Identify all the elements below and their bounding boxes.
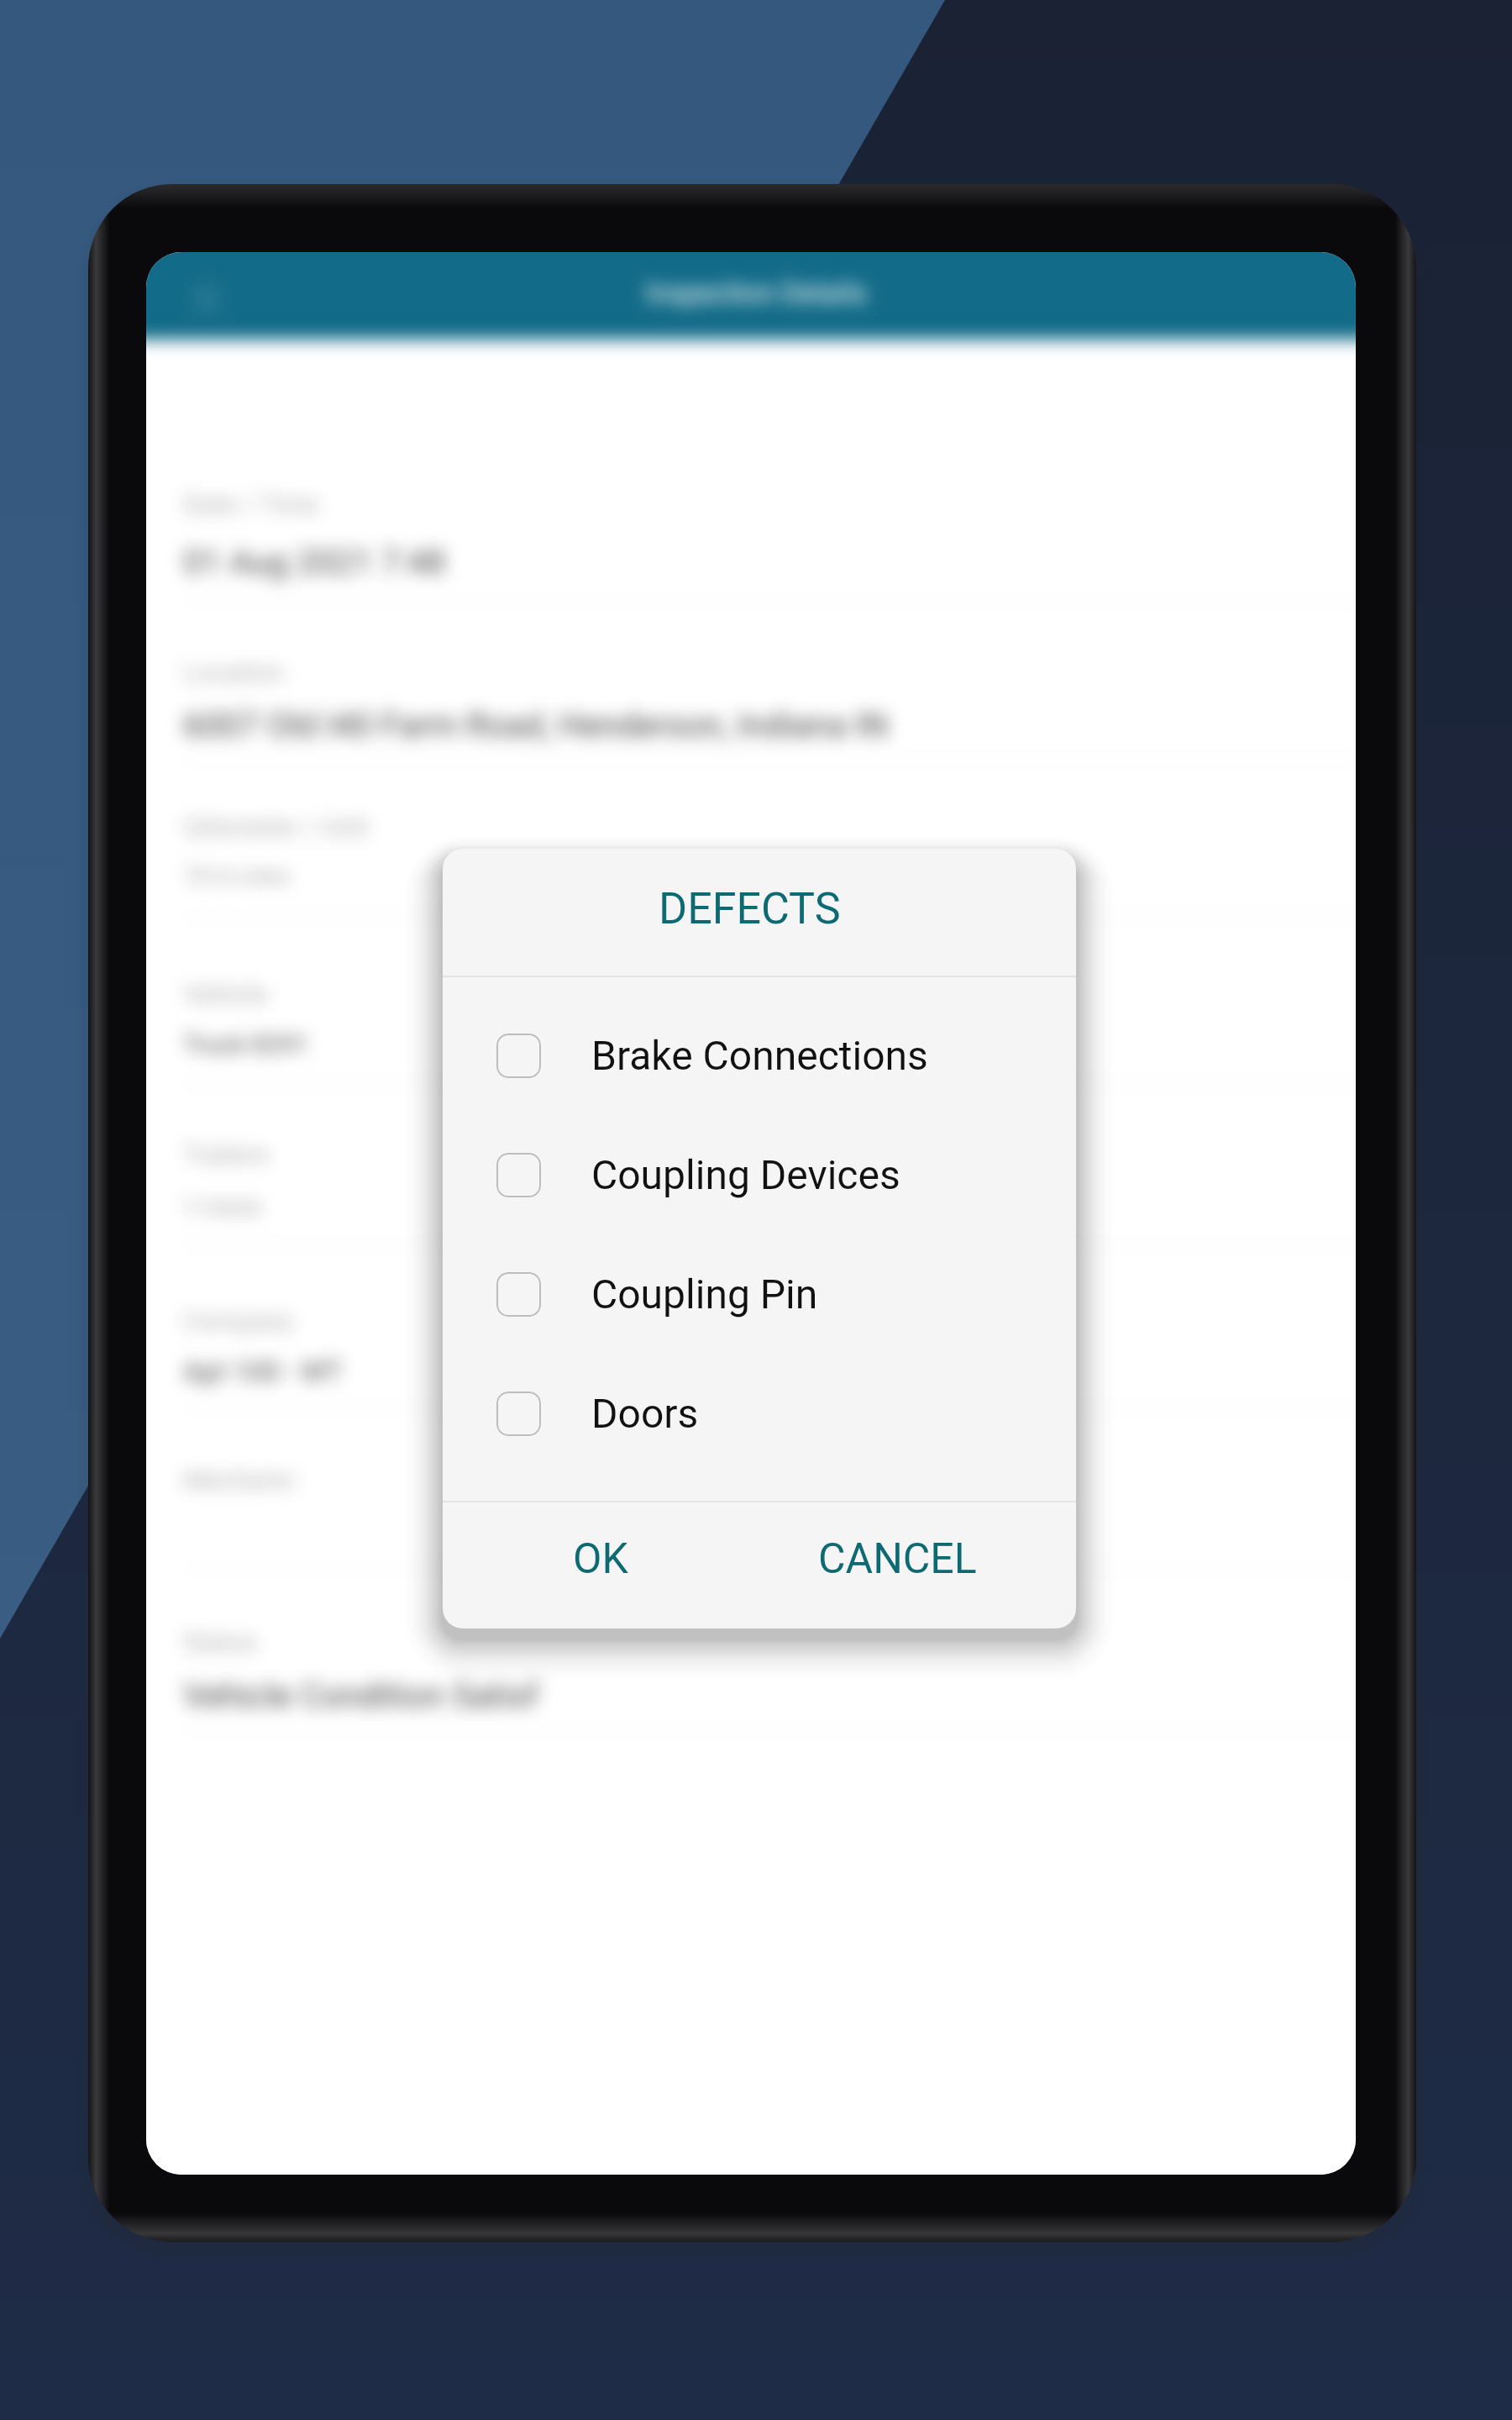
button[interactable]: Coupling Pin xyxy=(443,1234,1076,1354)
staticText: Odometer / Unit xyxy=(183,812,369,842)
staticText: CANCEL xyxy=(818,1534,977,1584)
staticText: Trailers xyxy=(183,1139,270,1170)
staticText: Vehicle Condition Satisf xyxy=(183,1676,539,1716)
button[interactable]: OK xyxy=(548,1502,654,1628)
staticText: Status xyxy=(183,1627,258,1657)
staticText: 7014 miles xyxy=(183,864,291,889)
staticText: Inspection Details xyxy=(646,276,867,309)
staticText: OK xyxy=(573,1534,628,1584)
staticText: 6007 Old I40 Farm Road, Henderson, India… xyxy=(183,706,889,745)
staticText: Brake Connections xyxy=(591,1032,928,1079)
staticText: Vehicle xyxy=(183,979,268,1009)
staticText: T-10043 xyxy=(183,1196,261,1221)
staticText: DEFECTS xyxy=(659,883,841,934)
staticText: Coupling Devices xyxy=(591,1151,900,1198)
button[interactable]: CANCEL xyxy=(793,1502,1002,1628)
staticText: Truck 8291 xyxy=(183,1029,309,1059)
staticText: Doors xyxy=(591,1390,699,1437)
button[interactable]: Menu xyxy=(190,281,223,314)
button[interactable]: Doors xyxy=(443,1354,1076,1473)
staticText: Location xyxy=(183,657,284,687)
button[interactable]: Coupling Devices xyxy=(443,1115,1076,1234)
button[interactable]: Brake Connections xyxy=(443,996,1076,1115)
staticText: 01 Aug 2021 7:48 xyxy=(183,543,446,582)
staticText: Date / Time xyxy=(183,489,319,519)
staticText: Mechanic xyxy=(183,1465,297,1495)
staticText: Company xyxy=(183,1306,294,1336)
staticText: Coupling Pin xyxy=(591,1270,818,1318)
staticText: Apt 100 - WT xyxy=(183,1355,343,1388)
